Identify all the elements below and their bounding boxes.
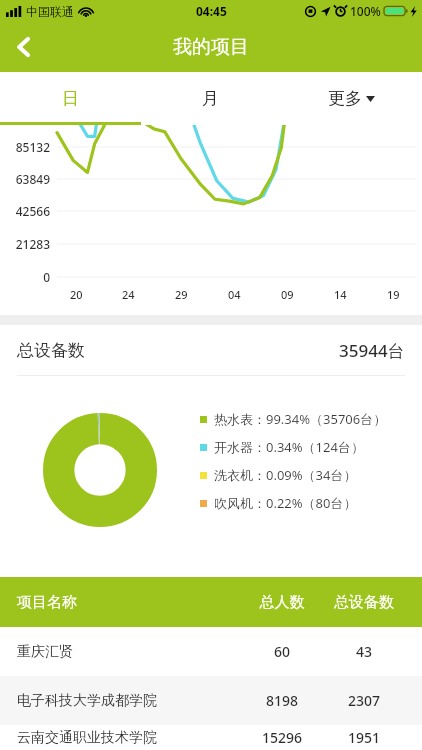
staticText: 0 [0, 269, 50, 285]
staticText: 总人数 [241, 593, 323, 612]
staticText: 04 [228, 287, 241, 302]
staticText: 63849 [0, 171, 50, 187]
staticText: 更多 [328, 88, 362, 109]
staticText: 8198 [241, 691, 323, 710]
staticText: 开水器：0.34%（124台） [214, 438, 364, 456]
staticText: 吹风机：0.22%（80台） [214, 494, 357, 512]
staticText: 60 [241, 642, 323, 661]
staticText: 24 [122, 287, 135, 302]
staticText: 总设备数 [323, 593, 405, 612]
button[interactable]: Back [0, 23, 48, 71]
staticText: 电子科技大学成都学院 [17, 692, 241, 710]
button[interactable]: 日 [0, 72, 140, 125]
staticText: 中国联通 [26, 4, 74, 19]
button[interactable]: 重庆汇贤 [0, 627, 422, 676]
staticText: 1951 [323, 728, 405, 747]
button[interactable]: 更多 [281, 72, 422, 125]
staticText: 43 [323, 642, 405, 661]
staticText: 14 [334, 287, 347, 302]
staticText: 重庆汇贤 [17, 643, 241, 661]
staticText: 42566 [0, 203, 50, 219]
staticText: 21283 [0, 236, 50, 252]
staticText: 洗衣机：0.09%（34台） [214, 466, 357, 484]
staticText: 100% [350, 3, 381, 19]
staticText: 85132 [0, 139, 50, 155]
staticText: 20 [70, 287, 83, 302]
staticText: 04:45 [196, 3, 227, 19]
staticText: 09 [281, 287, 294, 302]
staticText: 总设备数 [17, 340, 85, 361]
staticText: 我的项目 [173, 35, 249, 59]
button[interactable]: 月 [140, 72, 281, 125]
staticText: 日 [62, 88, 79, 109]
staticText: 2307 [323, 691, 405, 710]
staticText: 月 [202, 88, 219, 109]
staticText: 15296 [241, 728, 323, 747]
staticText: 热水表：99.34%（35706台） [214, 410, 387, 428]
staticText: 29 [175, 287, 188, 302]
staticText: 云南交通职业技术学院 [17, 729, 241, 747]
staticText: 35944台 [339, 339, 405, 362]
staticText: 19 [387, 287, 400, 302]
button[interactable]: 电子科技大学成都学院 [0, 676, 422, 725]
button[interactable]: 云南交通职业技术学院 [0, 725, 422, 750]
staticText: 项目名称 [17, 593, 241, 612]
